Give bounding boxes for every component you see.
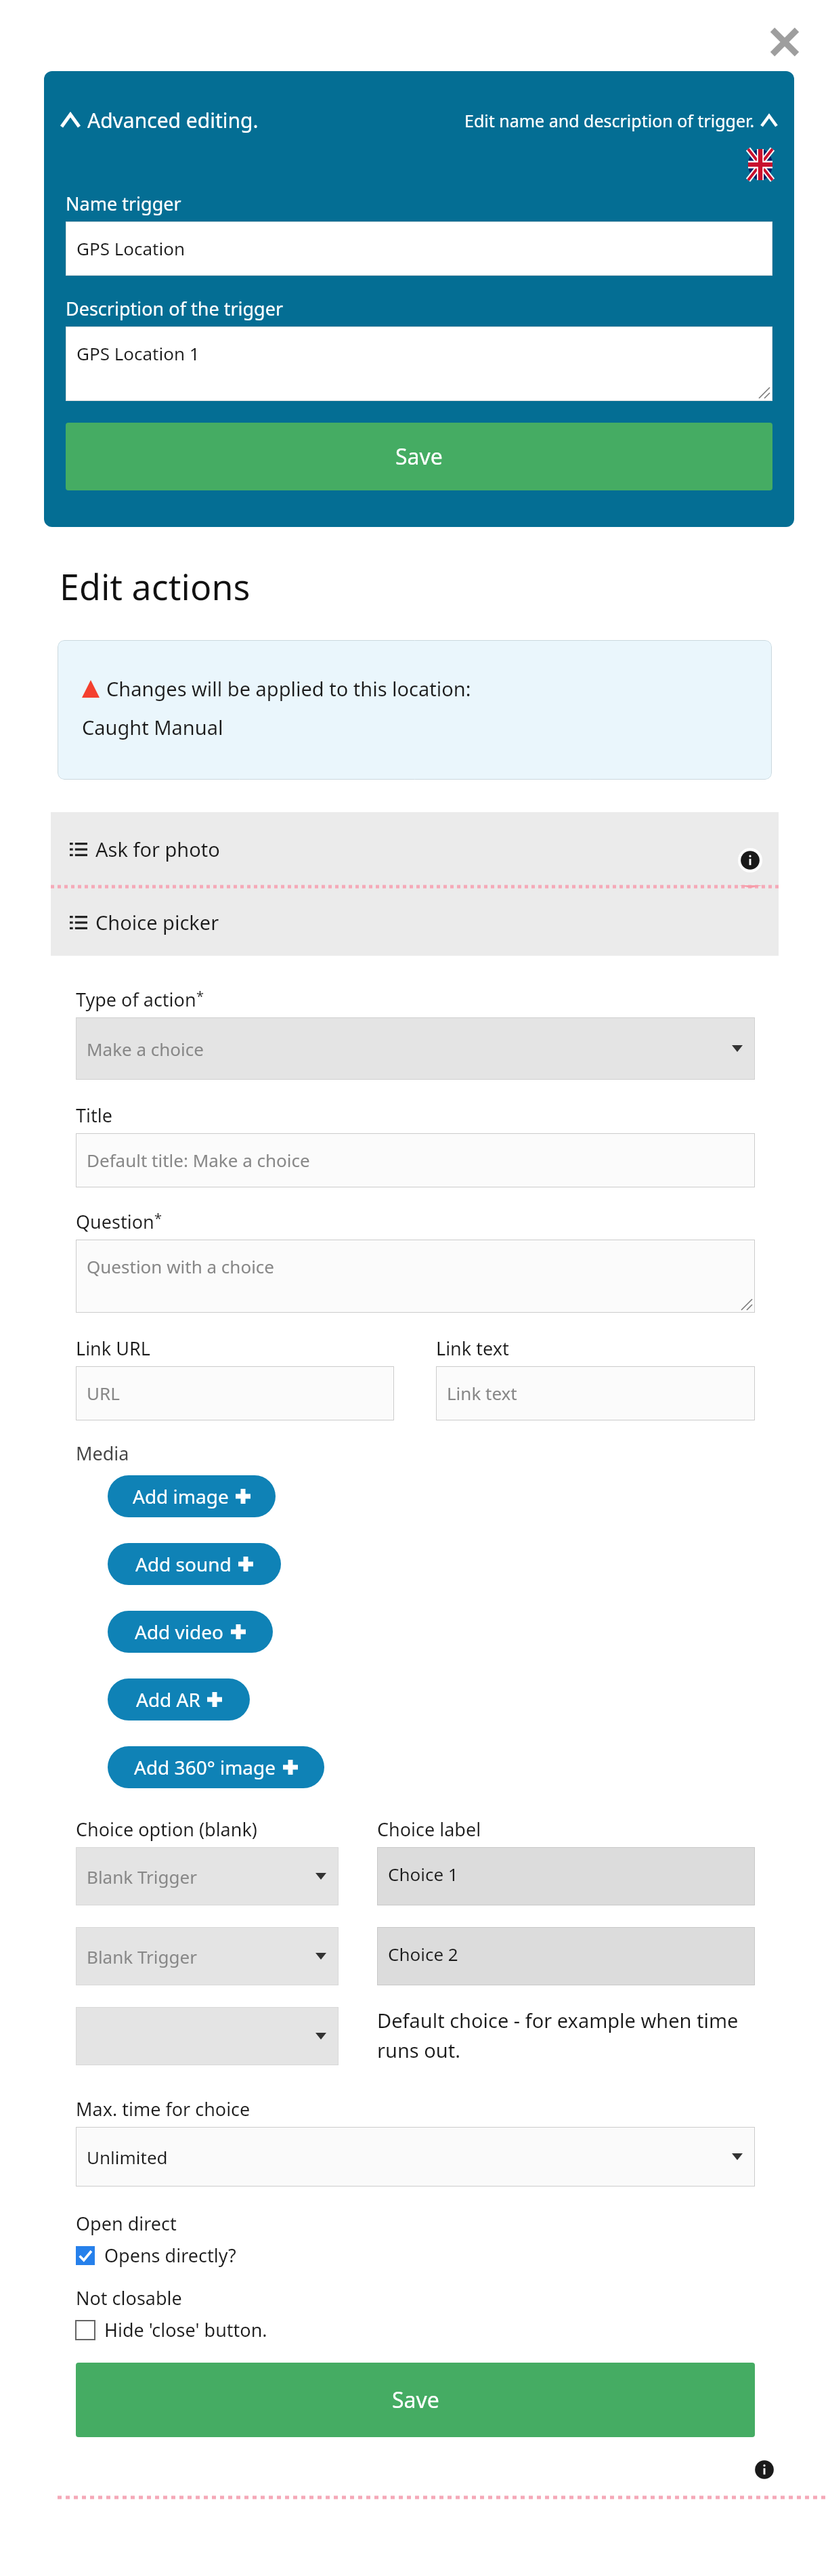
- staticText: Changes will be applied to this location…: [106, 675, 471, 702]
- staticText: Edit name and description of trigger.: [464, 109, 755, 132]
- staticText: Question: [76, 1209, 154, 1234]
- staticText: Link URL: [76, 1336, 150, 1361]
- button[interactable]: Save: [66, 423, 772, 490]
- staticText: Link text: [436, 1336, 509, 1361]
- staticText: Max. time for choice: [76, 2096, 250, 2121]
- button[interactable]: [76, 2007, 339, 2065]
- button[interactable]: GPS Location: [66, 221, 772, 276]
- button[interactable]: Add 360° image: [108, 1746, 324, 1788]
- staticText: Choice 1: [388, 1862, 458, 1886]
- button[interactable]: Hide 'close' button.: [44, 2315, 828, 2345]
- staticText: Question with a choice: [87, 1254, 274, 1278]
- staticText: Choice picker: [95, 909, 219, 935]
- staticText: Not closable: [76, 2285, 182, 2310]
- button[interactable]: Ask for photo: [51, 812, 779, 885]
- staticText: Ask for photo: [95, 836, 220, 862]
- button[interactable]: Choice picker: [51, 888, 779, 956]
- button[interactable]: Information: [749, 2455, 779, 2485]
- button[interactable]: Add video: [108, 1611, 273, 1653]
- button[interactable]: Unlimited: [76, 2127, 755, 2187]
- staticText: Blank Trigger: [87, 1865, 197, 1888]
- staticText: Type of action: [76, 987, 196, 1012]
- staticText: GPS Location: [77, 236, 186, 260]
- staticText: Save: [395, 442, 443, 471]
- staticText: Media: [76, 1441, 129, 1466]
- button[interactable]: Advanced editing.: [62, 106, 259, 134]
- button[interactable]: GPS Location 1: [66, 326, 772, 401]
- button[interactable]: Blank Trigger: [76, 1927, 339, 1985]
- button[interactable]: Link text: [436, 1366, 755, 1420]
- staticText: Choice label: [377, 1817, 481, 1842]
- staticText: Link text: [447, 1381, 517, 1405]
- staticText: GPS Location 1: [77, 341, 200, 365]
- staticText: Advanced editing.: [87, 106, 259, 134]
- staticText: *: [154, 1209, 162, 1227]
- button[interactable]: Add sound: [108, 1543, 281, 1585]
- staticText: Choice 2: [388, 1942, 458, 1966]
- staticText: Open direct: [76, 2211, 177, 2236]
- staticText: *: [196, 987, 204, 1005]
- button[interactable]: Question with a choice: [76, 1240, 755, 1313]
- staticText: Blank Trigger: [87, 1945, 197, 1968]
- button[interactable]: Choice 2: [377, 1927, 755, 1985]
- button[interactable]: URL: [76, 1366, 394, 1420]
- staticText: Hide 'close' button.: [104, 2317, 267, 2342]
- staticText: Default choice - for example when time r…: [377, 2007, 755, 2063]
- button[interactable]: Add image: [108, 1475, 276, 1517]
- staticText: Add 360° image: [134, 1754, 276, 1780]
- button[interactable]: Choice 1: [377, 1847, 755, 1905]
- staticText: Default title: Make a choice: [87, 1148, 310, 1172]
- staticText: Choice option (blank): [76, 1817, 257, 1842]
- staticText: Add AR: [136, 1687, 200, 1712]
- button[interactable]: Save: [76, 2363, 755, 2437]
- staticText: Opens directly?: [104, 2243, 236, 2268]
- button[interactable]: Opens directly?: [44, 2240, 828, 2271]
- staticText: Unlimited: [87, 2145, 168, 2169]
- staticText: Edit actions: [60, 562, 250, 610]
- button[interactable]: Information: [735, 845, 765, 875]
- button[interactable]: Edit name and description of trigger.: [464, 109, 777, 132]
- staticText: Save: [392, 2385, 439, 2415]
- staticText: Title: [76, 1103, 112, 1128]
- staticText: Add sound: [135, 1551, 232, 1577]
- staticText: Make a choice: [87, 1037, 204, 1061]
- staticText: Add image: [133, 1483, 229, 1509]
- button[interactable]: Close: [768, 26, 801, 58]
- staticText: Name trigger: [66, 191, 181, 216]
- staticText: Add video: [135, 1619, 224, 1645]
- staticText: Caught Manual: [82, 714, 223, 740]
- button[interactable]: Make a choice: [76, 1017, 755, 1080]
- staticText: URL: [87, 1381, 120, 1405]
- button[interactable]: Add AR: [108, 1678, 250, 1720]
- button[interactable]: Blank Trigger: [76, 1847, 339, 1905]
- staticText: Description of the trigger: [66, 296, 284, 321]
- button[interactable]: Default title: Make a choice: [76, 1133, 755, 1187]
